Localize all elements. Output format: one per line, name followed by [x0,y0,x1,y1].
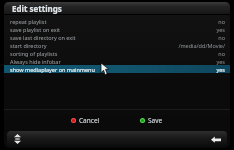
staticText: Cancel [79,116,100,125]
staticText: start directory [10,42,178,49]
button[interactable]: Always hide infobar [4,57,230,65]
staticText: sorting of playlists [10,50,218,57]
staticText: yes [216,58,225,65]
staticText: yes [216,26,225,33]
button[interactable]: Scroll up or down [11,132,24,145]
staticText: Edit settings [12,3,62,14]
staticText: no [218,34,225,41]
button[interactable]: repeat playlist [4,17,230,25]
button[interactable]: save playlist on exit [4,25,230,33]
staticText: no [218,50,225,57]
button[interactable]: sorting of playlists [4,49,230,57]
staticText: no [218,18,225,25]
button[interactable]: Save [137,114,166,127]
button[interactable]: start directory [4,41,230,49]
staticText: repeat playlist [10,18,218,25]
staticText: Always hide infobar [10,58,216,65]
staticText: save last directory on exit [10,34,218,41]
button[interactable]: show mediaplayer on mainmenu [4,65,230,73]
button[interactable]: Cancel [68,114,103,127]
staticText: yes [216,66,225,73]
staticText: show mediaplayer on mainmenu [10,66,216,73]
button[interactable]: save last directory on exit [4,33,230,41]
button[interactable]: Back [209,132,223,146]
staticText: /media/dd/Movie/ [178,42,225,49]
staticText: Save [148,116,163,125]
staticText: save playlist on exit [10,26,216,33]
